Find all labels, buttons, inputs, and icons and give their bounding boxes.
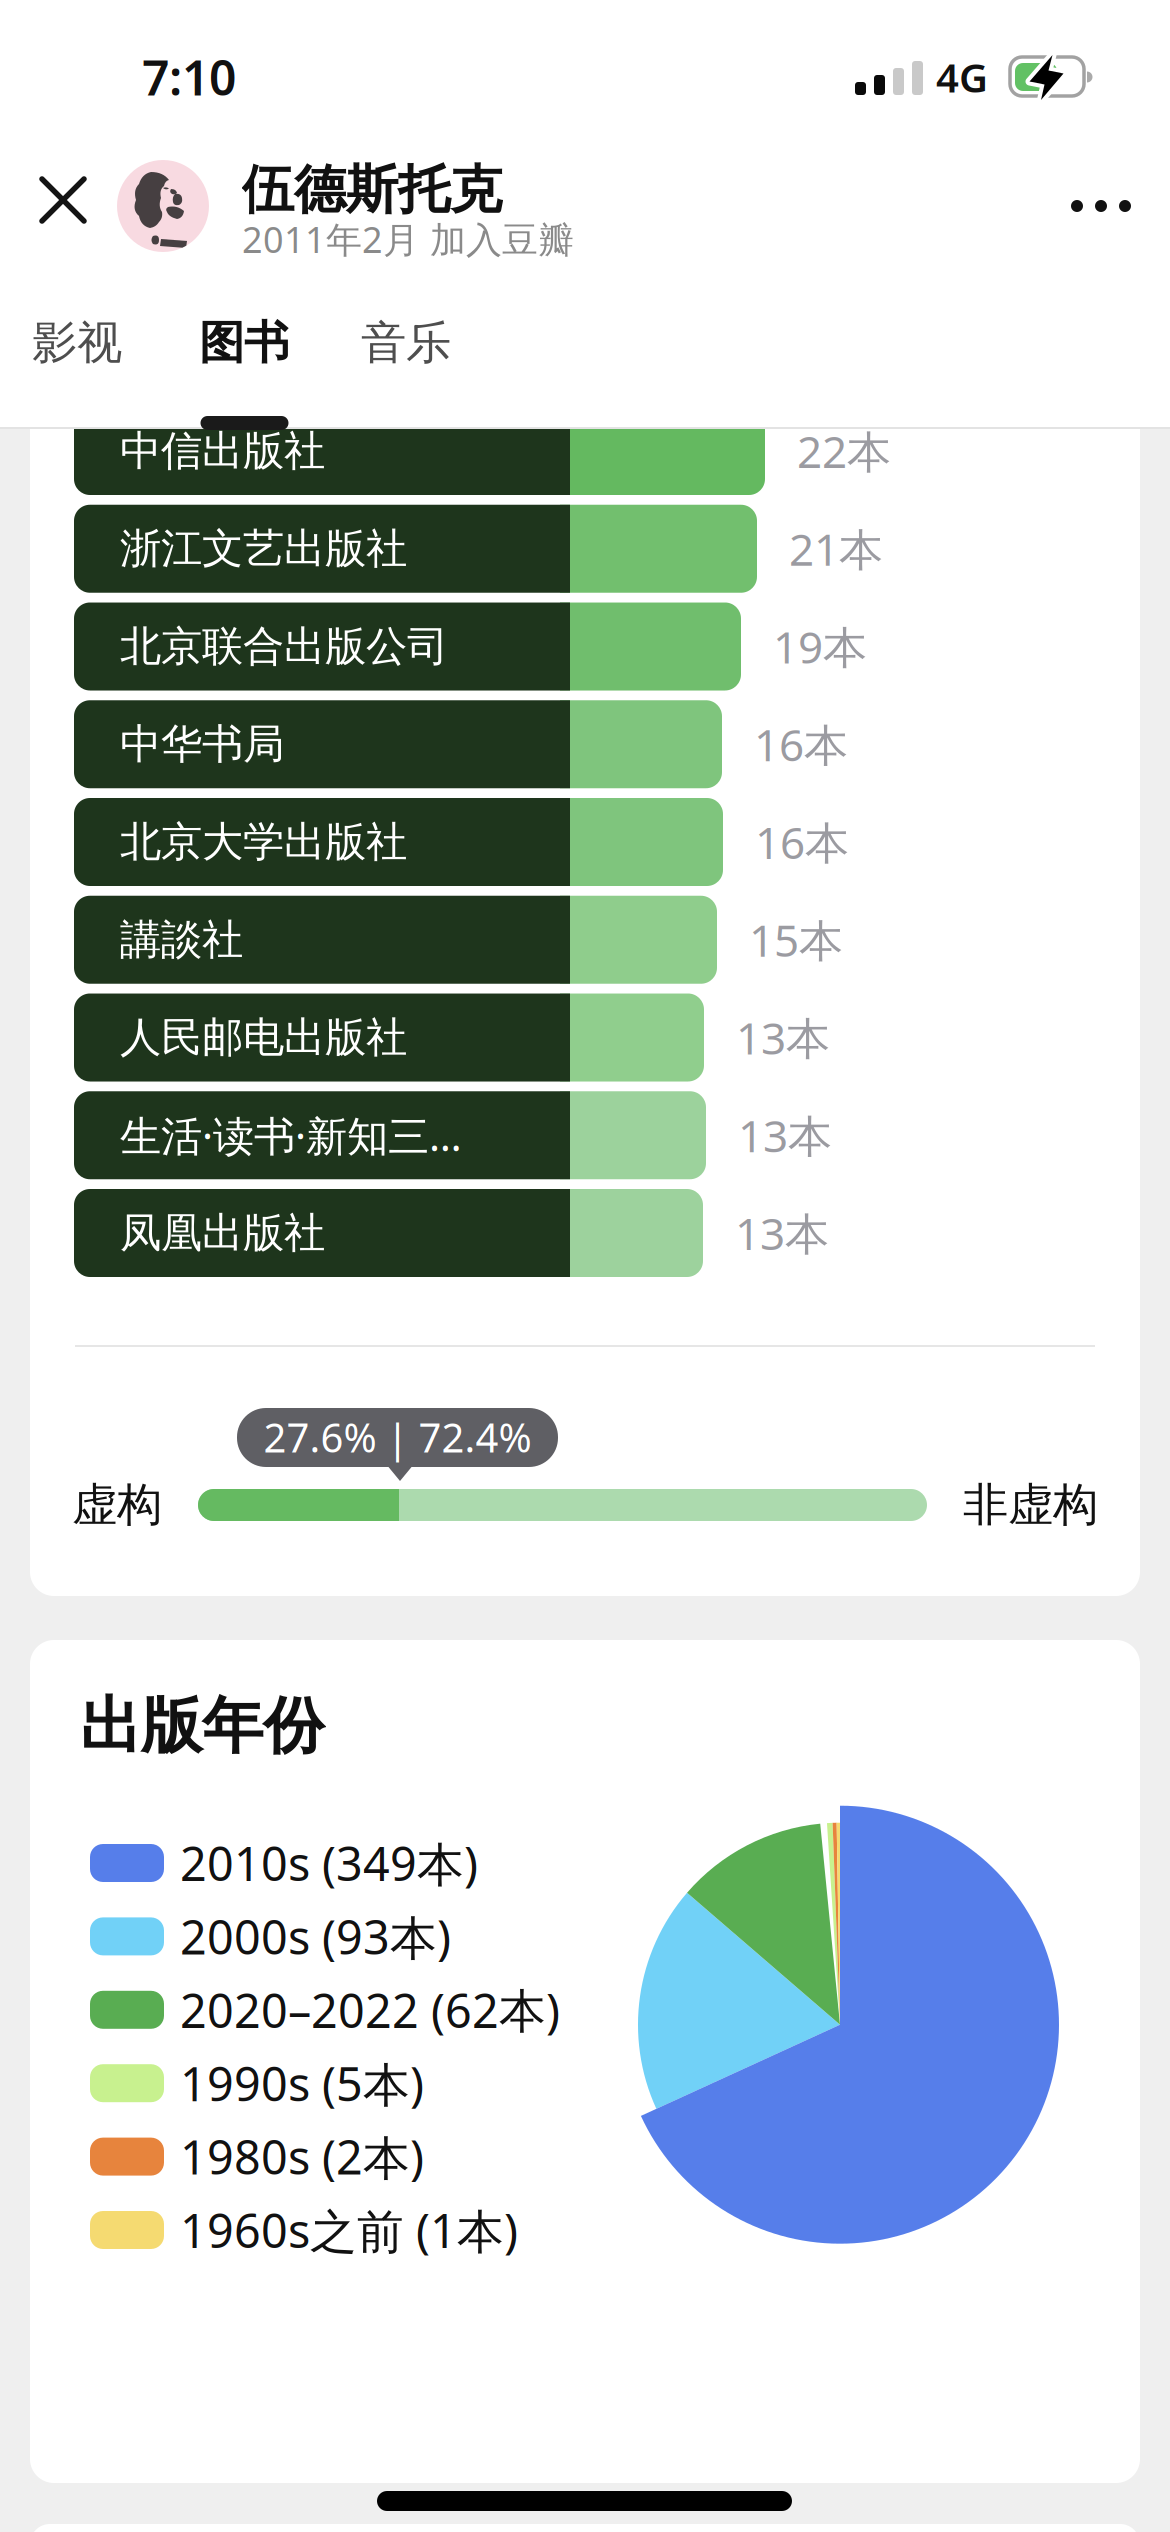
staticText: 生活·读书·新知三…: [120, 1108, 462, 1163]
staticText: 22本: [797, 422, 891, 480]
staticText: 人民邮电出版社: [120, 1012, 407, 1063]
staticText: 15本: [749, 910, 843, 969]
staticText: 講談社: [120, 914, 243, 965]
staticText: 中华书局: [120, 719, 284, 770]
staticText: 21本: [789, 519, 883, 578]
staticText: 13本: [738, 1106, 832, 1164]
staticText: 2000s (93本): [180, 1905, 451, 1967]
staticText: 音乐: [361, 315, 451, 371]
staticText: 凤凰出版社: [120, 1208, 325, 1258]
staticText: 图书: [199, 315, 289, 371]
staticText: 16本: [754, 715, 848, 773]
staticText: 2020–2022 (62本): [180, 1979, 560, 2041]
staticText: 1980s (2本): [180, 2125, 424, 2188]
button[interactable]: 音乐: [326, 303, 486, 383]
staticText: 1960s之前 (1本): [180, 2199, 518, 2261]
staticText: 2010s (349本): [180, 1832, 478, 1894]
staticText: 伍德斯托克: [242, 158, 502, 222]
staticText: 2011年2月 加入豆瓣: [242, 215, 574, 263]
staticText: 北京联合出版公司: [120, 621, 448, 672]
staticText: 7:10: [142, 45, 236, 109]
staticText: 非虚构: [963, 1477, 1098, 1533]
staticText: 虚构: [72, 1477, 162, 1533]
staticText: 浙江文艺出版社: [120, 523, 407, 574]
staticText: 1990s (5本): [180, 2052, 424, 2114]
staticText: 中信出版社: [120, 426, 325, 476]
staticText: 13本: [735, 1204, 829, 1262]
button[interactable]: 影视: [0, 303, 157, 383]
button[interactable]: More: [1056, 175, 1146, 237]
staticText: 4G: [936, 50, 988, 103]
staticText: 16本: [755, 813, 849, 871]
button[interactable]: Close: [18, 155, 108, 245]
staticText: 出版年份: [80, 1688, 324, 1764]
staticText: 19本: [773, 617, 867, 676]
staticText: 北京大学出版社: [120, 817, 407, 867]
staticText: 13本: [736, 1008, 830, 1067]
staticText: 影视: [32, 315, 122, 371]
button[interactable]: 图书: [164, 303, 324, 383]
staticText: 27.6% | 72.4%: [263, 1410, 531, 1463]
